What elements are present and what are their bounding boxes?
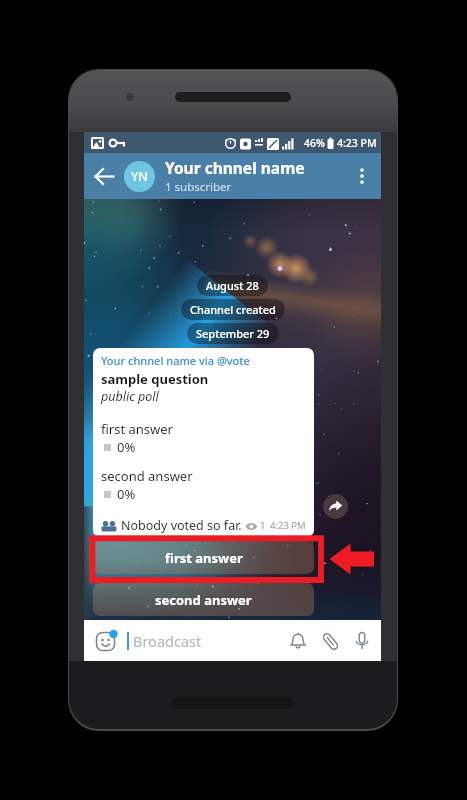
staticText: sample question [101, 370, 209, 388]
staticText: Your chnnel name [165, 157, 305, 178]
staticText: first answer [165, 549, 243, 567]
button[interactable]: second answer [93, 583, 314, 616]
staticText: first answer [101, 420, 173, 438]
staticText: 4:23 PM [270, 519, 306, 532]
staticText: August 28 [206, 278, 259, 293]
staticText: 0% [117, 485, 136, 503]
staticText: Nobody voted so far. [121, 517, 242, 534]
staticText: Channel created [190, 302, 276, 317]
button[interactable]: Back [84, 156, 124, 196]
staticText: 0% [117, 438, 136, 456]
button[interactable]: Share [323, 494, 348, 519]
staticText: 46% [304, 136, 325, 150]
staticText: second answer [155, 591, 252, 609]
button[interactable]: Emoji [93, 628, 119, 654]
staticText: public poll [101, 388, 159, 405]
staticText: YN [131, 168, 149, 185]
button[interactable]: first answer [93, 541, 314, 574]
staticText: Your chnnel name via @vote [101, 353, 250, 368]
staticText: September 29 [196, 326, 270, 341]
staticText: 1 [260, 519, 266, 532]
button[interactable]: Attach [314, 625, 346, 657]
staticText: 4:23 PM [337, 136, 377, 150]
staticText: second answer [101, 467, 193, 485]
staticText: Broadcast [133, 631, 202, 651]
button[interactable]: Voice message [346, 625, 378, 657]
button[interactable]: Notifications [282, 625, 314, 657]
button[interactable]: More options [343, 157, 381, 195]
staticText: 1 subscriber [165, 179, 232, 195]
